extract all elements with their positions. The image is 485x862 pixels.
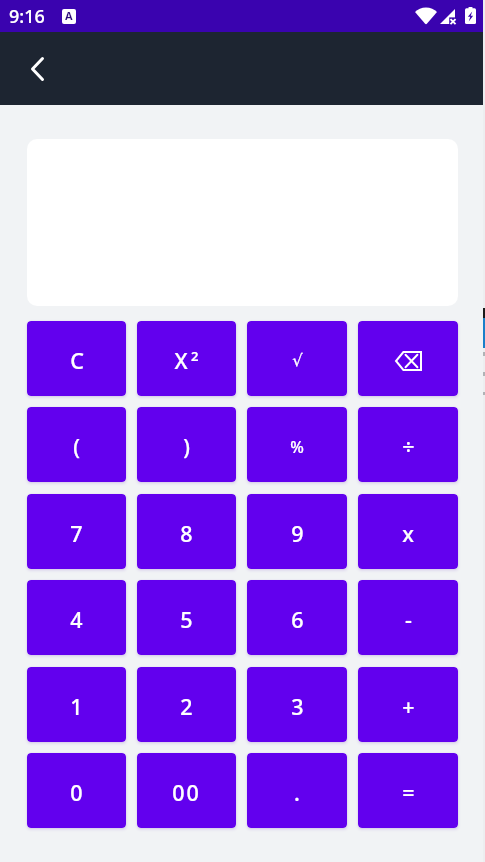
button[interactable]: % <box>247 407 347 482</box>
button[interactable]: + <box>358 667 458 742</box>
button[interactable]: ÷ <box>358 407 458 482</box>
staticText: = <box>402 778 415 807</box>
staticText: % <box>290 436 304 458</box>
staticText: ÷ <box>402 432 415 461</box>
staticText: 9 <box>291 519 304 548</box>
button[interactable]: C <box>27 321 126 396</box>
button[interactable]: 9 <box>247 494 347 569</box>
staticText: + <box>402 692 415 721</box>
button[interactable]: 00 <box>137 753 236 828</box>
staticText: 7 <box>70 519 83 548</box>
button[interactable]: 2 <box>137 667 236 742</box>
staticText: A <box>65 9 73 23</box>
button[interactable]: 0 <box>27 753 126 828</box>
staticText: 6 <box>291 605 304 634</box>
staticText: ) <box>183 432 190 461</box>
button[interactable]: Back <box>18 50 56 88</box>
button[interactable]: . <box>247 753 347 828</box>
button[interactable]: 6 <box>247 580 347 655</box>
button[interactable]: ( <box>27 407 126 482</box>
button[interactable]: ) <box>137 407 236 482</box>
button[interactable]: Backspace <box>358 321 458 396</box>
button[interactable]: 4 <box>27 580 126 655</box>
button[interactable]: - <box>358 580 458 655</box>
staticText: 5 <box>180 605 193 634</box>
staticText: - <box>405 605 412 634</box>
button[interactable]: 3 <box>247 667 347 742</box>
staticText: ( <box>73 432 80 461</box>
staticText: 00 <box>172 778 201 807</box>
staticText: . <box>294 778 300 807</box>
staticText: 3 <box>291 692 304 721</box>
other: Backspace <box>395 351 422 371</box>
button[interactable]: X <box>137 321 236 396</box>
button[interactable]: 5 <box>137 580 236 655</box>
button[interactable]: = <box>358 753 458 828</box>
button[interactable]: 1 <box>27 667 126 742</box>
button[interactable]: 7 <box>27 494 126 569</box>
staticText: 9:16 <box>9 4 45 29</box>
staticText: 8 <box>180 519 193 548</box>
staticText: 2 <box>191 347 199 365</box>
staticText: 1 <box>70 692 83 721</box>
staticText: C <box>70 346 84 375</box>
button[interactable]: x <box>358 494 458 569</box>
button[interactable]: 8 <box>137 494 236 569</box>
staticText: X <box>174 346 188 375</box>
button[interactable]: √ <box>247 321 347 396</box>
staticText: 2 <box>180 692 193 721</box>
staticText: √ <box>292 351 303 370</box>
staticText: x <box>402 519 414 548</box>
staticText: 0 <box>70 778 83 807</box>
staticText: 4 <box>70 605 83 634</box>
